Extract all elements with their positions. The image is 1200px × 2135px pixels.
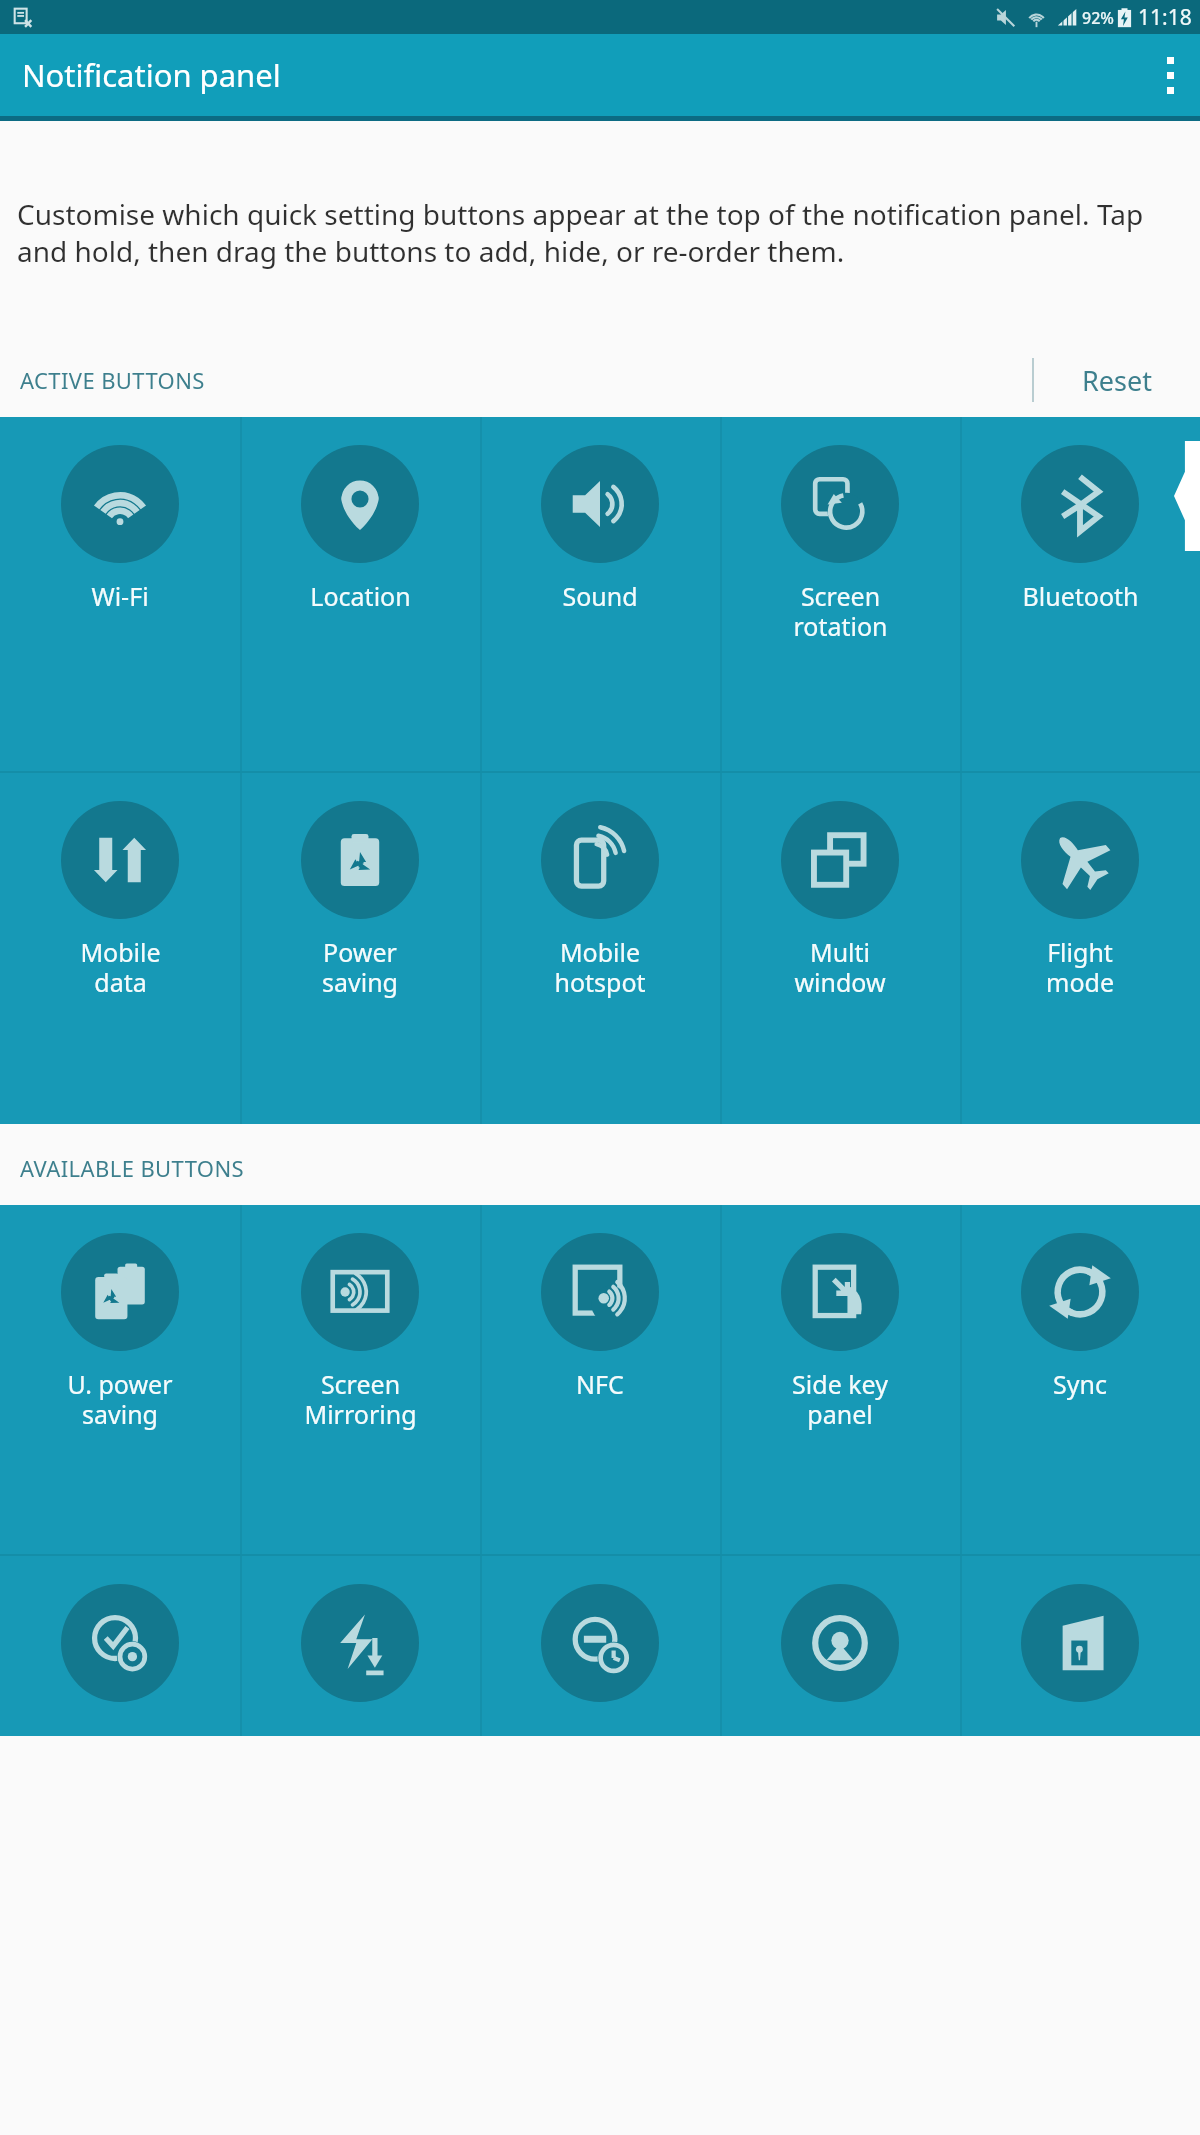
button[interactable]: private — [960, 1556, 1200, 1736]
staticText: Multi window — [794, 935, 886, 1000]
staticText: Sound — [562, 579, 638, 613]
button[interactable]: flash — [240, 1556, 480, 1736]
button[interactable]: NFC — [480, 1205, 720, 1554]
button[interactable]: Wi-Fi — [0, 417, 240, 771]
button[interactable]: Bluetooth — [960, 417, 1200, 771]
button[interactable]: Power saving — [240, 773, 480, 1124]
staticText: Location — [310, 579, 411, 613]
button[interactable]: Sound — [480, 417, 720, 771]
staticText: U. power saving — [67, 1367, 173, 1432]
staticText: Flight mode — [1046, 935, 1114, 1000]
staticText: NFC — [576, 1367, 624, 1401]
staticText: Screen Mirroring — [304, 1367, 417, 1432]
button[interactable]: Side key panel — [720, 1205, 960, 1554]
button[interactable]: Screen Mirroring — [240, 1205, 480, 1554]
button[interactable]: Reset — [1034, 343, 1200, 417]
staticText: 11:18 — [1138, 3, 1192, 32]
staticText: Wi-Fi — [91, 579, 149, 613]
button[interactable]: Sync — [960, 1205, 1200, 1554]
staticText: Sync — [1053, 1367, 1107, 1401]
staticText: Customise which quick setting buttons ap… — [17, 195, 1186, 270]
button[interactable]: Mobile hotspot — [480, 773, 720, 1124]
staticText: ACTIVE BUTTONS — [20, 365, 205, 395]
button[interactable]: Multi window — [720, 773, 960, 1124]
button[interactable]: Mobile data — [0, 773, 240, 1124]
button[interactable]: Location — [240, 417, 480, 771]
staticText: Reset — [1082, 362, 1152, 399]
staticText: 92% — [1082, 7, 1114, 29]
staticText: Mobile data — [80, 935, 161, 1000]
staticText: Screen rotation — [793, 579, 888, 644]
staticText: Mobile hotspot — [554, 935, 646, 1000]
staticText: Power saving — [322, 935, 398, 1000]
staticText: AVAILABLE BUTTONS — [20, 1153, 245, 1183]
button[interactable]: Screen rotation — [720, 417, 960, 771]
button[interactable]: drive — [720, 1556, 960, 1736]
staticText: Bluetooth — [1022, 579, 1139, 613]
button[interactable]: Flight mode — [960, 773, 1200, 1124]
button[interactable]: U. power saving — [0, 1205, 240, 1554]
button[interactable]: smart — [0, 1556, 240, 1736]
staticText: Side key panel — [792, 1367, 888, 1432]
button[interactable]: block — [480, 1556, 720, 1736]
button[interactable]: More options — [1140, 34, 1200, 116]
staticText: Notification panel — [22, 54, 281, 96]
